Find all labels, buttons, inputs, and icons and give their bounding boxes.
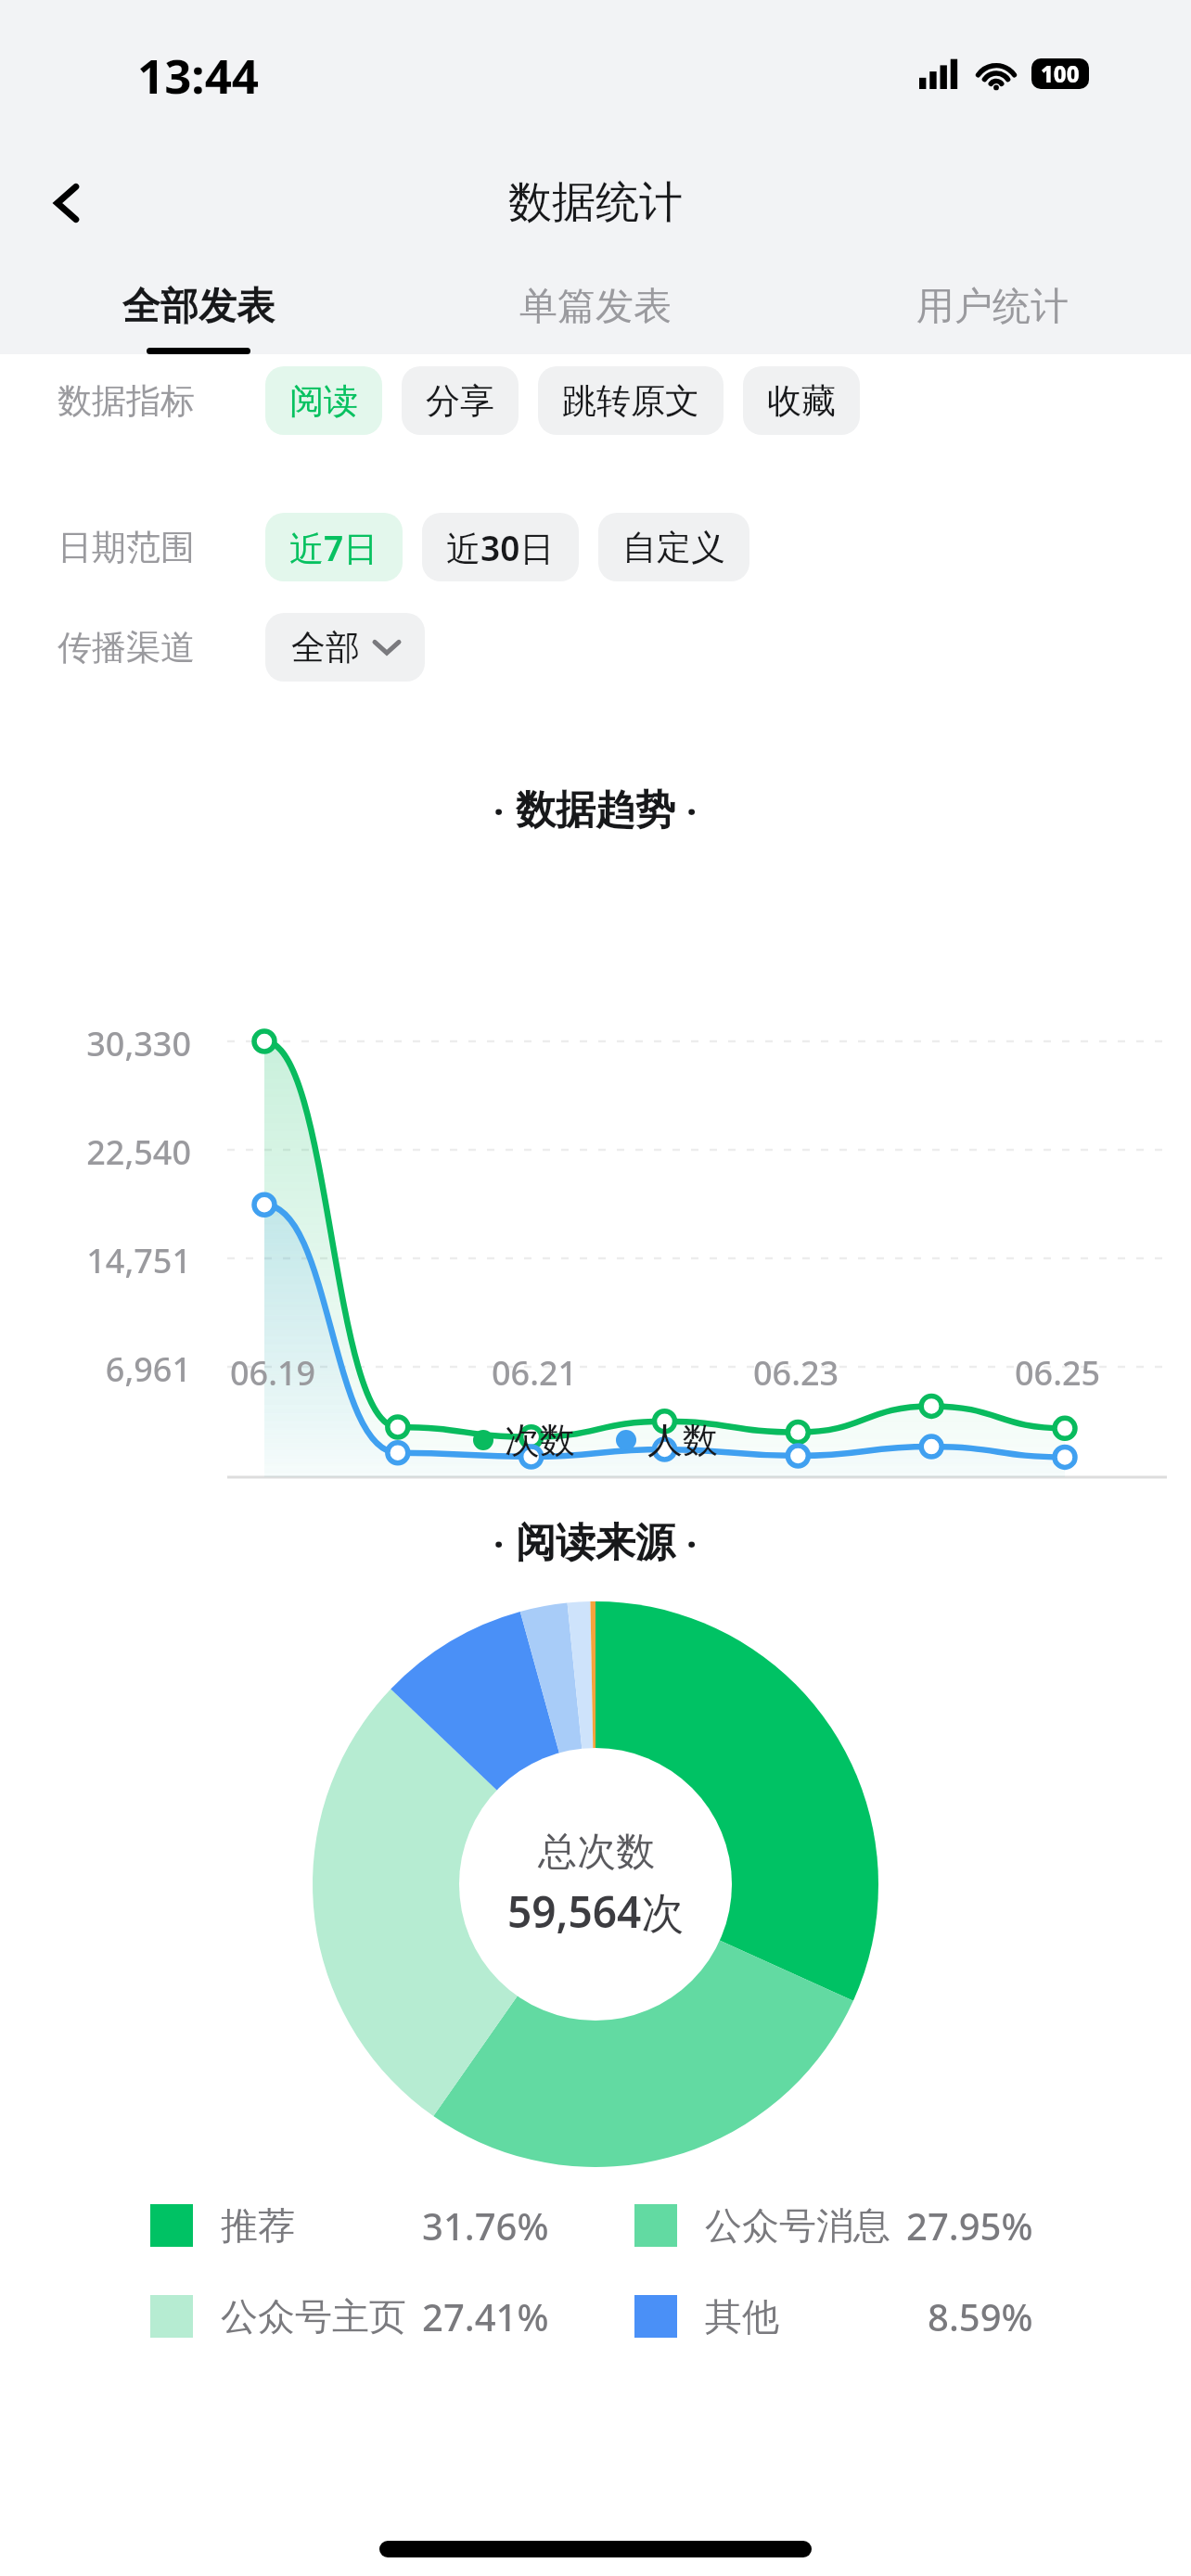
staticText: 分享 (426, 379, 494, 423)
staticText: 人数 (647, 1418, 718, 1462)
staticText: 日期范围 (58, 526, 239, 569)
button[interactable]: 近7日 (265, 513, 403, 581)
staticText: 数据统计 (508, 175, 683, 230)
staticText: 06.21 (492, 1350, 649, 1396)
button[interactable]: 收藏 (743, 366, 860, 435)
staticText: 其他 (705, 2293, 928, 2340)
staticText: 27.95% (906, 2200, 1033, 2251)
staticText: 自定义 (622, 526, 725, 569)
button[interactable]: 近30日 (422, 513, 579, 581)
button[interactable]: 自定义 (598, 513, 749, 581)
staticText: 06.19 (230, 1350, 388, 1396)
button[interactable]: 阅读 (265, 366, 382, 435)
staticText: 传播渠道 (58, 626, 239, 670)
staticText: 全部发表 (122, 283, 275, 331)
button[interactable]: 其他 (634, 2291, 1033, 2341)
staticText: 全部 (291, 626, 360, 670)
staticText: 31.76% (422, 2200, 549, 2251)
button[interactable]: 用户统计 (794, 270, 1191, 354)
staticText: 单篇发表 (519, 283, 672, 331)
button[interactable]: 全部 (265, 613, 425, 682)
button[interactable]: Back (26, 161, 109, 245)
staticText: 公众号消息 (705, 2202, 906, 2249)
staticText: 8.59% (928, 2291, 1033, 2341)
staticText: 收藏 (767, 379, 836, 423)
staticText: · (493, 785, 505, 835)
staticText: 30,330 (0, 1021, 191, 1066)
staticText: 14,751 (0, 1238, 191, 1283)
staticText: 06.25 (1015, 1350, 1172, 1396)
staticText: 推荐 (221, 2202, 422, 2249)
staticText: · (686, 1518, 698, 1568)
staticText: 数据趋势 (516, 785, 675, 835)
button[interactable]: 单篇发表 (397, 270, 794, 354)
staticText: 06.23 (753, 1350, 911, 1396)
staticText: 22,540 (0, 1129, 191, 1175)
staticText: · (493, 1518, 505, 1568)
staticText: 跳转原文 (562, 379, 699, 423)
button[interactable]: 公众号消息 (634, 2200, 1033, 2251)
staticText: 阅读 (289, 379, 358, 423)
button[interactable]: 分享 (402, 366, 519, 435)
staticText: 近7日 (289, 524, 378, 571)
staticText: 阅读来源 (516, 1518, 675, 1568)
staticText: 公众号主页 (221, 2293, 422, 2340)
staticText: · (686, 785, 698, 835)
button[interactable]: 全部发表 (0, 270, 397, 354)
button[interactable]: 跳转原文 (538, 366, 724, 435)
button[interactable]: 公众号主页 (150, 2291, 549, 2341)
staticText: 6,961 (0, 1346, 191, 1392)
staticText: 27.41% (422, 2291, 549, 2341)
button[interactable]: 推荐 (150, 2200, 549, 2251)
staticText: 100 (1041, 58, 1080, 89)
staticText: 59,564次 (507, 1882, 685, 1941)
staticText: 总次数 (538, 1828, 655, 1877)
staticText: 次数 (505, 1418, 575, 1462)
staticText: 近30日 (446, 524, 555, 571)
staticText: 用户统计 (916, 283, 1069, 331)
staticText: 13:44 (137, 43, 260, 107)
staticText: 数据指标 (58, 379, 239, 423)
